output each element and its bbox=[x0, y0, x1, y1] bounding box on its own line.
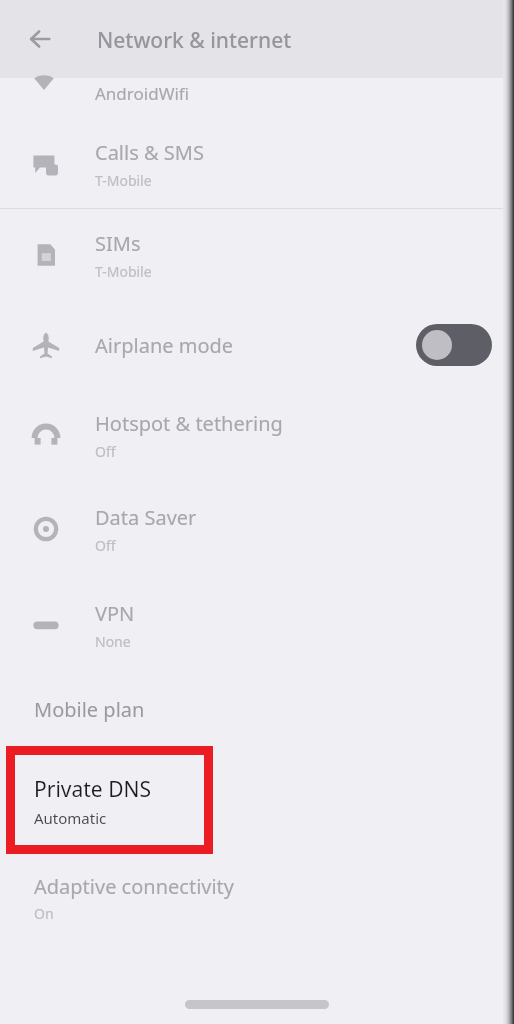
button[interactable]: Calls & SMS bbox=[0, 120, 514, 208]
staticText: Hotspot & tethering bbox=[95, 410, 283, 437]
staticText: SIMs bbox=[95, 230, 141, 257]
button[interactable]: Mobile plan bbox=[0, 673, 514, 745]
button[interactable]: Hotspot & tethering bbox=[0, 389, 514, 481]
staticText: On bbox=[34, 904, 54, 923]
staticText: Adaptive connectivity bbox=[34, 873, 235, 900]
staticText: Private DNS bbox=[34, 775, 151, 804]
staticText: T-Mobile bbox=[95, 262, 152, 281]
button[interactable]: Private DNS bbox=[0, 775, 514, 828]
staticText: Off bbox=[95, 536, 116, 555]
staticText: AndroidWifi bbox=[95, 82, 190, 105]
button[interactable]: Airplane mode bbox=[0, 301, 514, 389]
staticText: None bbox=[95, 632, 131, 651]
button[interactable]: VPN bbox=[0, 577, 514, 673]
button[interactable]: SIMs bbox=[0, 209, 514, 301]
staticText: Mobile plan bbox=[34, 696, 145, 723]
staticText: Network & internet bbox=[97, 26, 292, 55]
button[interactable]: Data Saver bbox=[0, 481, 514, 577]
staticText: Calls & SMS bbox=[95, 139, 204, 166]
staticText: Automatic bbox=[34, 808, 107, 828]
button[interactable]: AndroidWifi bbox=[0, 78, 514, 120]
button[interactable]: Adaptive connectivity bbox=[0, 855, 514, 935]
staticText: VPN bbox=[95, 600, 135, 627]
staticText: T-Mobile bbox=[95, 171, 152, 190]
staticText: Off bbox=[95, 442, 116, 461]
staticText: Data Saver bbox=[95, 504, 197, 531]
button[interactable]: Airplane mode toggle bbox=[416, 324, 492, 366]
button[interactable]: Back bbox=[18, 17, 62, 61]
staticText: Airplane mode bbox=[95, 332, 234, 359]
